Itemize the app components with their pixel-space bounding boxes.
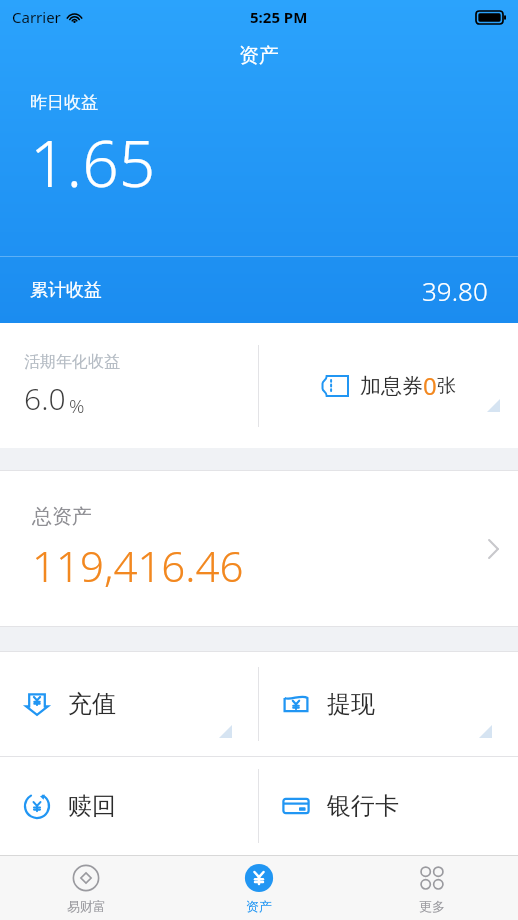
staticText: 提现	[327, 689, 375, 719]
button[interactable]: 活期年化收益	[0, 323, 258, 448]
button[interactable]: 银行卡	[259, 757, 518, 855]
staticText: 总资产	[32, 504, 92, 529]
button[interactable]: 资产	[172, 856, 345, 920]
staticText: 加息券	[360, 373, 423, 399]
staticText: %	[69, 393, 85, 419]
button[interactable]: 加息券	[259, 323, 518, 448]
button[interactable]: 总资产	[0, 471, 518, 626]
staticText: 张	[437, 374, 456, 398]
staticText: 赎回	[68, 791, 116, 821]
staticText: 5:25 PM	[250, 7, 308, 27]
staticText: 充值	[68, 689, 116, 719]
staticText: 累计收益	[30, 279, 102, 302]
staticText: 资产	[239, 43, 279, 68]
staticText: 资产	[246, 898, 272, 914]
staticText: 更多	[419, 898, 445, 914]
staticText: 1.65	[30, 119, 156, 206]
staticText: 39.80	[422, 273, 488, 308]
staticText: 易财富	[67, 898, 106, 914]
staticText: 活期年化收益	[24, 352, 120, 372]
button[interactable]: 充值	[0, 652, 258, 756]
button[interactable]: 易财富	[0, 856, 172, 920]
staticText: 6.0	[24, 378, 66, 419]
staticText: 昨日收益	[30, 92, 98, 113]
staticText: 119,416.46	[32, 537, 244, 594]
button[interactable]: 提现	[259, 652, 518, 756]
staticText: 银行卡	[327, 791, 399, 821]
button[interactable]: 更多	[345, 856, 518, 920]
staticText: Carrier	[12, 7, 61, 27]
staticText: 0	[423, 369, 437, 402]
button[interactable]: 赎回	[0, 757, 258, 855]
